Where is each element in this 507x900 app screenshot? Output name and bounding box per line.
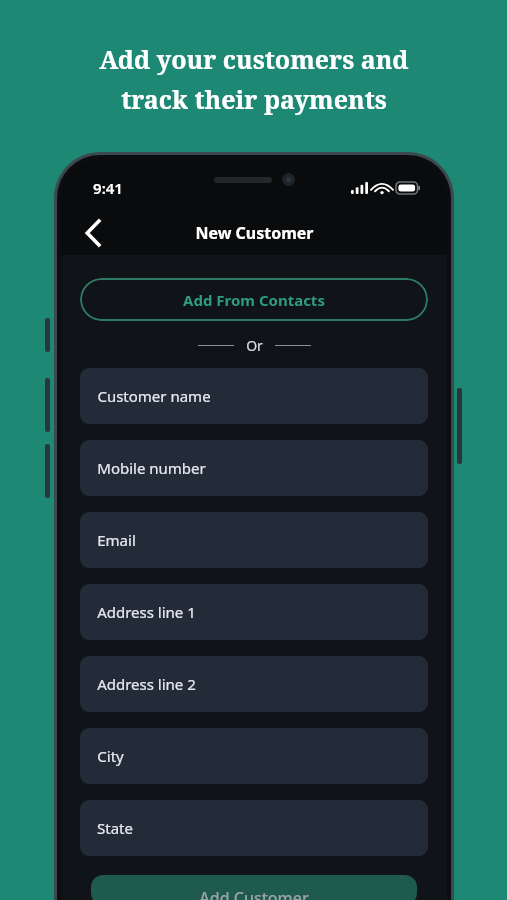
- staticText: New Customer: [195, 222, 314, 244]
- staticText: State: [97, 818, 133, 838]
- staticText: 9:41: [93, 178, 123, 198]
- staticText: Add From Contacts: [183, 290, 325, 310]
- button[interactable]: Address line 2: [80, 656, 428, 712]
- staticText: City: [97, 746, 124, 766]
- staticText: Mobile number: [97, 458, 206, 478]
- button[interactable]: Customer name: [80, 368, 428, 424]
- button[interactable]: Back: [73, 213, 113, 253]
- button[interactable]: Add From Contacts: [80, 278, 428, 321]
- staticText: track their payments: [121, 82, 387, 116]
- button[interactable]: Mobile number: [80, 440, 428, 496]
- button[interactable]: State: [80, 800, 428, 856]
- button[interactable]: City: [80, 728, 428, 784]
- staticText: Customer name: [97, 386, 211, 406]
- staticText: Address line 1: [97, 602, 196, 622]
- button[interactable]: Email: [80, 512, 428, 568]
- staticText: Address line 2: [97, 674, 196, 694]
- button[interactable]: Address line 1: [80, 584, 428, 640]
- button[interactable]: Add Customer: [91, 875, 417, 900]
- staticText: Or: [246, 336, 263, 355]
- staticText: Add Customer: [199, 887, 309, 900]
- staticText: Add your customers and: [99, 42, 409, 76]
- staticText: Email: [97, 530, 136, 550]
